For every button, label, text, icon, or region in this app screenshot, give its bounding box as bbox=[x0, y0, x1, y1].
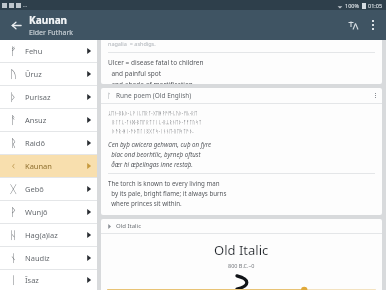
staticText: ᚾ bbox=[10, 253, 17, 264]
staticText: Kaunan bbox=[29, 13, 68, 27]
staticText: Wunjō bbox=[25, 207, 48, 217]
staticText: ᚠ bbox=[10, 46, 17, 57]
staticText: ᚹ bbox=[10, 207, 17, 218]
staticText: The torch is known to every living man bbox=[108, 179, 220, 187]
staticText: 01:05 bbox=[368, 2, 383, 9]
staticText: 100% bbox=[345, 2, 360, 9]
button[interactable]: ᚢ bbox=[0, 63, 97, 85]
staticText: Old Italic bbox=[116, 222, 142, 230]
staticText: Elder Futhark bbox=[29, 28, 74, 38]
staticText: Kaunan bbox=[25, 161, 52, 171]
staticText: ᛚ bbox=[107, 92, 112, 99]
staticText: ᚺ bbox=[10, 230, 17, 241]
staticText: Fehu bbox=[25, 46, 43, 56]
button[interactable]: ᚲ bbox=[0, 155, 97, 177]
staticText: Þurisaz bbox=[25, 92, 51, 102]
staticText: by its pale, bright flame; it always bur… bbox=[108, 189, 227, 197]
staticText: Naudiz bbox=[25, 253, 50, 263]
staticText: ᛁ bbox=[10, 275, 17, 286]
staticText: Ulcer = disease fatal to children bbox=[108, 58, 204, 67]
button[interactable]: Old Italic bbox=[101, 219, 382, 290]
button[interactable]: ᛚ bbox=[101, 88, 382, 215]
button[interactable]: ᚷ bbox=[0, 178, 97, 200]
staticText: Ūruz bbox=[25, 69, 42, 79]
button[interactable]: Navigate up bbox=[6, 15, 26, 35]
button[interactable]: ᚹ bbox=[0, 201, 97, 223]
staticText: … bbox=[23, 2, 27, 9]
staticText: Īsaz bbox=[25, 275, 39, 285]
staticText: Old Italic bbox=[214, 241, 269, 259]
staticText: ᚦᚫᚱ·ᚻᛁ·ᚫᚦᛖᛚᛁᛝᚷᚪᛋ·ᛁᚾᚾᛖ·ᚱᛖᛋᛏᚫᚦ. bbox=[108, 127, 194, 134]
staticText: where princes sit within. bbox=[108, 199, 182, 207]
button[interactable]: ᚨ bbox=[0, 109, 97, 131]
staticText: and abode of mortification. bbox=[108, 80, 195, 84]
staticText: ᚨ bbox=[10, 115, 17, 126]
staticText: Ansuz bbox=[25, 115, 47, 125]
button[interactable]: More options bbox=[363, 15, 383, 35]
button[interactable]: ᚱ bbox=[0, 132, 97, 154]
button[interactable]: Translate bbox=[343, 15, 363, 35]
staticText: 800 B.C.–0 bbox=[228, 262, 255, 269]
button[interactable]: ᚦ bbox=[0, 86, 97, 108]
staticText: ðær hi æþelingas inne restaþ. bbox=[108, 160, 193, 168]
staticText: Gebō bbox=[25, 184, 44, 194]
button[interactable]: ᚠ bbox=[0, 40, 97, 62]
button[interactable]: nagalia = ashdigs. bbox=[101, 40, 382, 84]
button[interactable]: ᛁ bbox=[0, 270, 97, 290]
staticText: ᚦ bbox=[10, 92, 17, 103]
staticText: ᛒᛚᚪᚳ·ᚪᚾᛞ·ᛒᛖᚪᚱᛏᛚᛁᚳ·ᛒᛦᚱᚾᛖᚦ·ᚩᚠᛏᚢᛋᛏ bbox=[108, 118, 202, 125]
button[interactable]: ᚺ bbox=[0, 224, 97, 246]
staticText: ᚲ bbox=[10, 161, 17, 172]
staticText: Raidō bbox=[25, 138, 45, 148]
staticText: ᚱ bbox=[10, 138, 17, 149]
staticText: ᚢ bbox=[10, 69, 17, 80]
staticText: blac ond beorhtlic, byrneþ oftust bbox=[108, 150, 201, 158]
staticText: ᛣᛖᚾ·ᛒᚣᚦ·ᚳᚹᛁᚳᛖᚱᚪ·ᚷᛖᚻᚹᚫᛗ·ᚳᚢᚦ·ᚠᚣ·ᚱᛖ bbox=[108, 109, 198, 116]
button[interactable]: ᚾ bbox=[0, 247, 97, 269]
staticText: Rune poem (Old English) bbox=[116, 91, 192, 100]
staticText: and painful spot bbox=[108, 69, 162, 78]
staticText: nagalia = ashdigs. bbox=[108, 40, 156, 47]
staticText: Hag(a)laz bbox=[25, 230, 58, 240]
staticText: ᚷ bbox=[10, 184, 17, 195]
staticText: Cen byþ cwicera gehwam, cuþ on fyre bbox=[108, 140, 212, 148]
